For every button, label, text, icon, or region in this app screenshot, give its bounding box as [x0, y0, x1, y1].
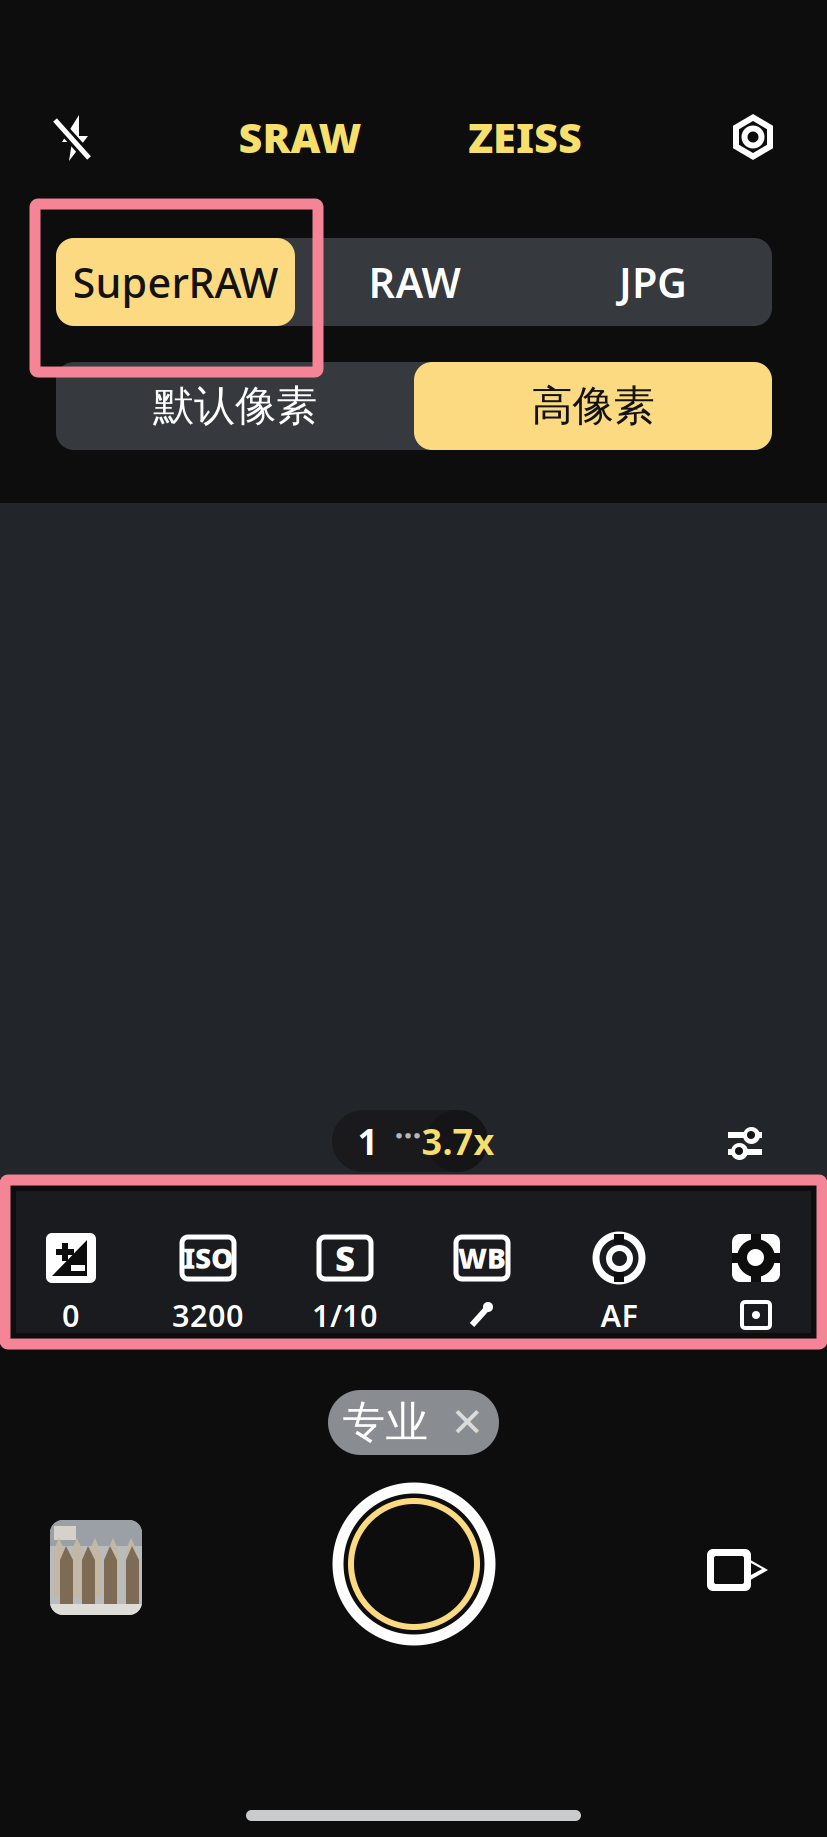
staticText: 1/10: [312, 1295, 378, 1335]
button[interactable]: Adjust settings: [727, 1127, 763, 1160]
staticText: 0: [62, 1295, 80, 1335]
staticText: 1: [357, 1117, 378, 1165]
button[interactable]: Switch to video: [707, 1549, 769, 1591]
staticText: WB: [458, 1239, 506, 1277]
button[interactable]: Settings: [705, 95, 801, 179]
staticText: RAW: [368, 255, 460, 309]
button[interactable]: [687, 1192, 824, 1334]
button[interactable]: ZEISS: [450, 102, 600, 172]
staticText: ···: [394, 1114, 421, 1156]
button[interactable]: Photo library: [50, 1520, 142, 1615]
button[interactable]: SRAW: [225, 102, 375, 172]
staticText: SuperRAW: [72, 255, 278, 309]
button[interactable]: S: [276, 1192, 413, 1334]
staticText: 专业: [342, 1396, 428, 1449]
staticText: S: [335, 1235, 355, 1281]
staticText: ISO: [183, 1239, 233, 1277]
staticText: SRAW: [238, 110, 361, 164]
button[interactable]: 3.7x: [420, 1110, 496, 1172]
button[interactable]: AF: [550, 1192, 687, 1334]
button[interactable]: SuperRAW: [56, 238, 295, 326]
button[interactable]: Flash off: [24, 95, 120, 179]
staticText: 3.7x: [421, 1117, 494, 1165]
staticText: 默认像素: [153, 381, 317, 431]
staticText: 高像素: [531, 381, 654, 431]
button[interactable]: 专业: [328, 1390, 499, 1455]
staticText: JPG: [619, 255, 687, 309]
button[interactable]: 高像素: [414, 362, 772, 450]
button[interactable]: RAW: [295, 238, 534, 326]
staticText: 3200: [172, 1295, 244, 1335]
button[interactable]: 默认像素: [56, 362, 414, 450]
button[interactable]: 1: [345, 1110, 391, 1172]
staticText: ✕: [450, 1400, 484, 1445]
staticText: AF: [600, 1295, 637, 1335]
staticText: ZEISS: [468, 110, 582, 164]
button[interactable]: WB: [413, 1192, 550, 1334]
button[interactable]: ISO: [139, 1192, 276, 1334]
button[interactable]: JPG: [534, 238, 772, 326]
button[interactable]: Take photo: [329, 1479, 499, 1649]
button[interactable]: 0: [2, 1192, 139, 1334]
